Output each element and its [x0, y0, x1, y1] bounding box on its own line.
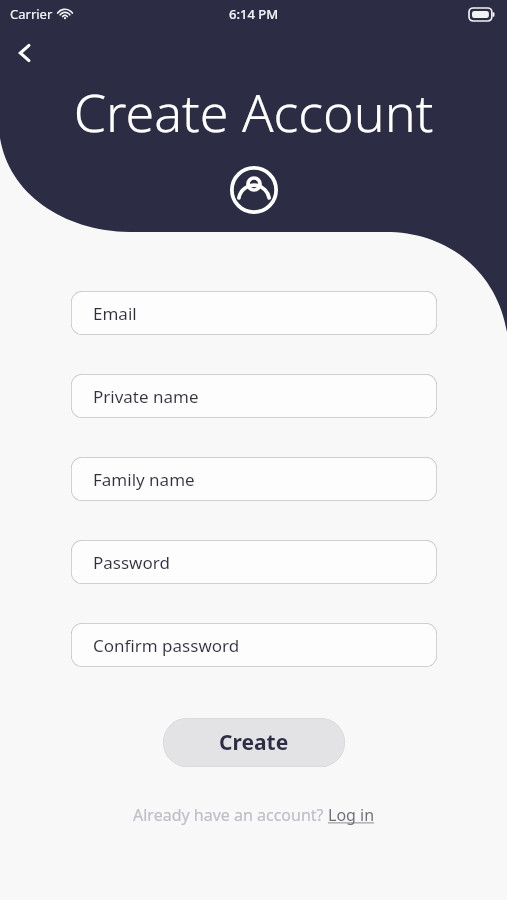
button[interactable]: Confirm password [71, 623, 437, 667]
staticText: Email [93, 302, 137, 325]
staticText: Family name [93, 468, 195, 491]
staticText: Create Account [0, 76, 507, 147]
staticText: Already have an account? [133, 804, 328, 826]
staticText: Create [219, 728, 289, 757]
staticText: 6:14 PM [229, 5, 279, 23]
button[interactable]: Private name [71, 374, 437, 418]
button[interactable]: Password [71, 540, 437, 584]
staticText: Private name [93, 385, 199, 408]
button[interactable]: Email [71, 291, 437, 335]
staticText: Confirm password [93, 634, 240, 657]
button[interactable]: Family name [71, 457, 437, 501]
button[interactable]: Back [2, 30, 48, 76]
button[interactable]: Create [163, 718, 345, 767]
staticText: Carrier [10, 5, 53, 23]
button[interactable]: Log in [328, 804, 375, 826]
staticText: Password [93, 551, 170, 574]
